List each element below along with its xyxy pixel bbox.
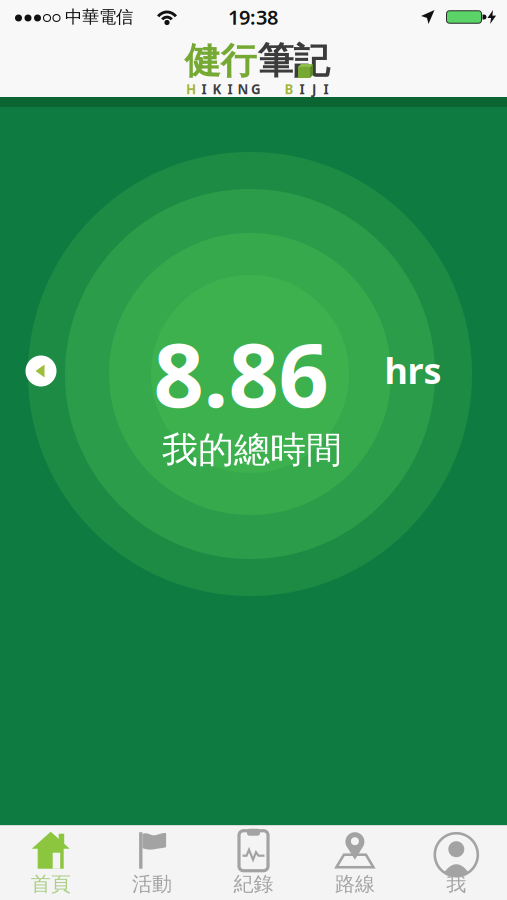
staticText: I (201, 80, 206, 98)
staticText: 8.86 (153, 315, 328, 431)
staticText: G (251, 80, 261, 98)
staticText: 我 (446, 872, 466, 896)
button[interactable]: 紀錄 (203, 825, 304, 899)
staticText: I (323, 80, 328, 98)
staticText: K (212, 80, 221, 98)
staticText: J (312, 80, 316, 98)
staticText: N (237, 80, 248, 98)
staticText: 紀錄 (233, 872, 273, 896)
button[interactable]: 路線 (304, 825, 406, 899)
button[interactable]: 活動 (101, 825, 203, 899)
staticText: 中華電信 (65, 6, 133, 28)
staticText: 筆記 (257, 39, 329, 83)
staticText: 首頁 (31, 872, 71, 896)
staticText: 19:38 (228, 4, 278, 30)
staticText: 健行 (184, 39, 256, 83)
button[interactable]: 我 (406, 825, 507, 899)
staticText: I (227, 80, 232, 98)
staticText: 我的總時間 (162, 428, 342, 472)
button[interactable]: 首頁 (0, 825, 101, 899)
staticText: 活動 (132, 872, 172, 896)
staticText: B (284, 80, 293, 98)
staticText: 路線 (335, 872, 375, 896)
button[interactable]: Previous (25, 355, 56, 386)
staticText: hrs (384, 346, 441, 394)
staticText: I (299, 80, 304, 98)
staticText: H (186, 80, 196, 98)
